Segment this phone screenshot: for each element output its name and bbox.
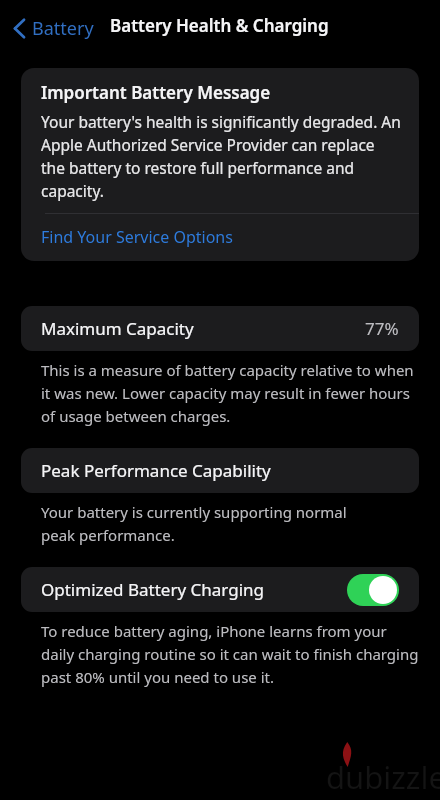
staticText: dubizzle bbox=[326, 756, 440, 798]
staticText: Peak Performance Capability bbox=[41, 459, 271, 482]
button[interactable]: Peak Performance Capability bbox=[21, 448, 419, 493]
staticText: Battery Health & Charging bbox=[110, 14, 329, 37]
staticText: Maximum Capacity bbox=[41, 317, 365, 340]
staticText: Your battery's health is significantly d… bbox=[41, 111, 401, 202]
button[interactable]: Find Your Service Options bbox=[21, 214, 419, 261]
staticText: This is a measure of battery capacity re… bbox=[41, 360, 419, 426]
staticText: To reduce battery aging, iPhone learns f… bbox=[41, 621, 419, 687]
button[interactable]: Back to Battery bbox=[8, 13, 99, 44]
button[interactable]: Optimized Battery Charging, on bbox=[347, 574, 399, 606]
staticText: Find Your Service Options bbox=[41, 226, 233, 248]
staticText: Your battery is currently supporting nor… bbox=[41, 502, 378, 545]
staticText: Important Battery Message bbox=[41, 81, 271, 104]
staticText: 77% bbox=[365, 317, 399, 340]
button[interactable]: Maximum Capacity bbox=[21, 306, 419, 351]
staticText: Battery bbox=[32, 16, 94, 41]
staticText: Optimized Battery Charging bbox=[41, 578, 347, 601]
